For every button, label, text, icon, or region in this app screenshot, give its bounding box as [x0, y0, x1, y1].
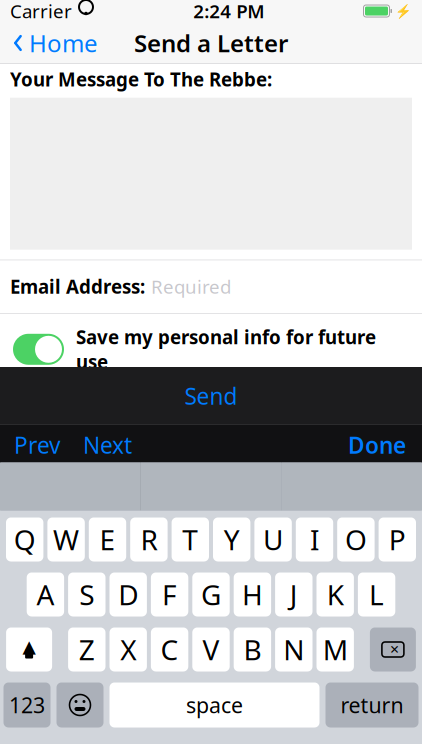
staticText: V — [202, 631, 219, 668]
button[interactable]: A — [27, 572, 64, 616]
staticText: Carrier — [10, 0, 72, 23]
staticText: C — [161, 631, 179, 668]
staticText: Y — [224, 521, 240, 558]
staticText: Email Address: — [10, 274, 145, 299]
staticText: D — [118, 576, 138, 613]
staticText: Your Message To The Rebbe: — [10, 67, 272, 92]
button[interactable]: Delete — [370, 627, 416, 671]
staticText: Home — [29, 27, 98, 59]
button[interactable]: B — [234, 627, 271, 671]
button[interactable]: S — [68, 572, 105, 616]
button[interactable]: Save my personal info for future use — [13, 334, 64, 365]
button[interactable]: O — [337, 517, 375, 561]
staticText: W — [53, 521, 79, 558]
button[interactable]: U — [254, 517, 292, 561]
button[interactable]: I — [296, 517, 333, 561]
button[interactable]: X — [109, 627, 147, 671]
staticText: 2:24 PM — [193, 0, 264, 23]
button[interactable]: E — [89, 517, 126, 561]
button[interactable]: Send — [141, 375, 281, 417]
staticText: space — [186, 691, 243, 719]
staticText: Send a Letter — [134, 27, 288, 59]
button[interactable]: T — [172, 517, 209, 561]
button[interactable]: F — [151, 572, 188, 616]
button[interactable]: Prediction one — [0, 462, 140, 510]
staticText: M — [323, 631, 348, 668]
staticText: Required — [151, 274, 231, 299]
staticText: O — [345, 521, 367, 558]
staticText: L — [369, 576, 384, 613]
button[interactable]: Prev — [0, 422, 75, 468]
staticText: K — [327, 576, 344, 613]
button[interactable]: D — [109, 572, 147, 616]
button[interactable]: return — [325, 682, 418, 727]
button[interactable]: Next — [75, 422, 140, 468]
button[interactable]: H — [234, 572, 271, 616]
staticText: U — [263, 521, 283, 558]
staticText: G — [201, 576, 221, 613]
button[interactable]: C — [151, 627, 188, 671]
staticText: ✕ — [389, 643, 399, 656]
button[interactable]: W — [47, 517, 85, 561]
button[interactable]: G — [192, 572, 230, 616]
button[interactable]: Q — [6, 517, 43, 561]
staticText: Send — [184, 381, 237, 411]
staticText: ⚡ — [395, 3, 412, 19]
staticText: X — [120, 631, 136, 668]
staticText: return — [340, 691, 403, 719]
button[interactable]: Prediction three — [281, 462, 421, 510]
staticText: T — [182, 521, 198, 558]
staticText: N — [283, 631, 304, 668]
staticText: S — [79, 576, 94, 613]
button[interactable]: R — [130, 517, 168, 561]
button[interactable]: Shift — [6, 627, 52, 671]
button[interactable]: M — [316, 627, 354, 671]
button[interactable]: V — [192, 627, 230, 671]
button[interactable]: Home — [0, 21, 98, 65]
staticText: Done — [348, 430, 406, 460]
button[interactable]: L — [358, 572, 395, 616]
staticText: B — [243, 631, 261, 668]
staticText: Save my personal info for future use — [76, 324, 376, 374]
button[interactable]: P — [379, 517, 416, 561]
staticText: Q — [14, 521, 36, 558]
button[interactable]: Prediction two — [141, 462, 281, 510]
staticText: 123 — [9, 691, 45, 719]
staticText: R — [140, 521, 157, 558]
button[interactable]: N — [275, 627, 312, 671]
button[interactable]: Y — [213, 517, 250, 561]
staticText: Prev — [14, 430, 61, 460]
staticText: P — [389, 521, 406, 558]
button[interactable]: Emoji — [56, 682, 103, 727]
button[interactable]: space — [109, 682, 319, 727]
staticText: Next — [83, 430, 132, 460]
staticText: F — [162, 576, 177, 613]
button[interactable]: Z — [68, 627, 105, 671]
button[interactable]: Done — [332, 422, 422, 468]
staticText: I — [310, 521, 319, 558]
staticText: A — [36, 576, 54, 613]
staticText: H — [242, 576, 263, 613]
button[interactable]: Numbers — [3, 682, 50, 727]
button[interactable]: K — [316, 572, 354, 616]
staticText: Z — [79, 631, 95, 668]
button[interactable]: J — [275, 572, 312, 616]
staticText: J — [290, 576, 298, 613]
staticText: E — [99, 521, 115, 558]
staticText: ▲ — [23, 637, 36, 656]
